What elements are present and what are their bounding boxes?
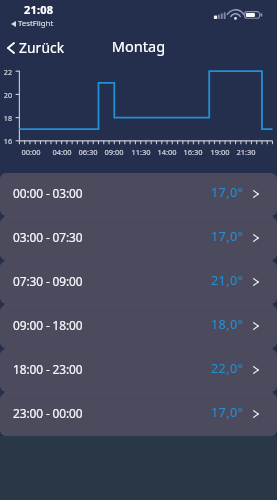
- staticText: 19:00: [205, 147, 235, 157]
- staticText: 21,0°: [211, 272, 244, 289]
- staticText: 22: [0, 67, 12, 77]
- staticText: 04:00: [47, 147, 77, 157]
- staticText: 20: [0, 90, 12, 100]
- staticText: 18:00 - 23:00: [13, 361, 83, 377]
- staticText: 09:00 - 18:00: [13, 317, 83, 333]
- button[interactable]: 09:00 - 18:00: [0, 305, 277, 348]
- staticText: 18: [0, 113, 12, 123]
- button[interactable]: Zurück: [3, 35, 71, 60]
- staticText: 03:00 - 07:30: [13, 229, 83, 245]
- staticText: 21:30: [231, 147, 261, 157]
- staticText: 17,0°: [211, 228, 244, 245]
- staticText: 07:30 - 09:00: [13, 273, 83, 289]
- staticText: 06:30: [73, 147, 103, 157]
- button[interactable]: 23:00 - 00:00: [0, 393, 277, 436]
- staticText: 22,0°: [211, 360, 244, 377]
- staticText: 18,0°: [211, 316, 244, 333]
- button[interactable]: 07:30 - 09:00: [0, 261, 277, 304]
- staticText: 14:00: [152, 147, 182, 157]
- staticText: 00:00: [16, 147, 46, 157]
- staticText: 16:30: [178, 147, 208, 157]
- staticText: Montag: [0, 36, 277, 56]
- staticText: TestFlight: [18, 18, 54, 29]
- staticText: Zurück: [19, 38, 65, 57]
- button[interactable]: 00:00 - 03:00: [0, 173, 277, 216]
- staticText: 09:00: [99, 147, 129, 157]
- staticText: 11:30: [126, 147, 156, 157]
- staticText: 17,0°: [211, 404, 244, 421]
- button[interactable]: 18:00 - 23:00: [0, 349, 277, 392]
- staticText: 17,0°: [211, 184, 244, 201]
- staticText: 00:00 - 03:00: [13, 185, 83, 201]
- staticText: 16: [0, 136, 12, 146]
- staticText: 21:08: [24, 2, 54, 17]
- button[interactable]: 03:00 - 07:30: [0, 217, 277, 260]
- staticText: 23:00 - 00:00: [13, 405, 83, 421]
